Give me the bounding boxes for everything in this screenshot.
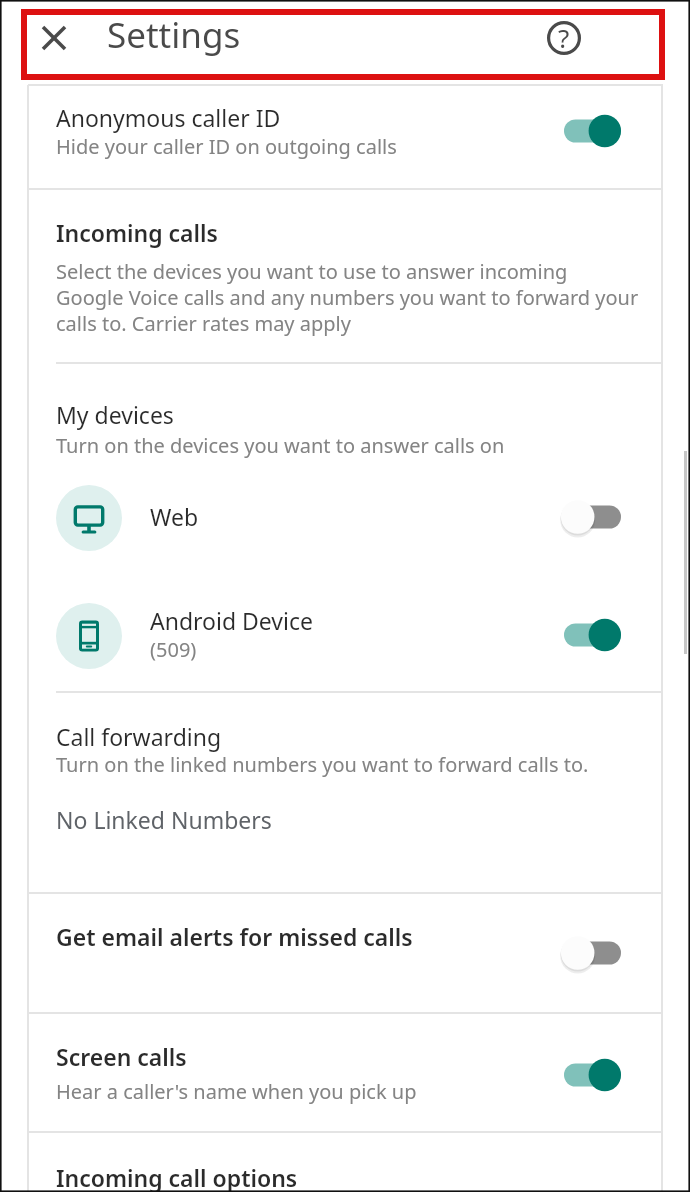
- staticText: ?: [558, 20, 570, 55]
- staticText: Call forwarding: [56, 721, 222, 752]
- button[interactable]: Incoming call options: [0, 1133, 690, 1192]
- button[interactable]: Close: [27, 11, 81, 65]
- staticText: Turn on the linked numbers you want to f…: [56, 751, 589, 778]
- button[interactable]: Get email alerts for missed calls: [0, 894, 690, 1013]
- button[interactable]: Help: [537, 11, 591, 65]
- staticText: Screen calls: [56, 1041, 187, 1072]
- staticText: Hide your caller ID on outgoing calls: [56, 133, 397, 160]
- staticText: Incoming call options: [56, 1162, 298, 1192]
- staticText: No Linked Numbers: [56, 804, 272, 835]
- staticText: Web: [150, 501, 199, 532]
- staticText: Hear a caller's name when you pick up: [56, 1078, 417, 1105]
- staticText: Android Device: [150, 605, 314, 636]
- staticText: My devices: [56, 399, 174, 430]
- button[interactable]: Android Device: [0, 596, 690, 676]
- staticText: Anonymous caller ID: [56, 102, 281, 133]
- staticText: Incoming calls: [56, 217, 218, 248]
- button[interactable]: Anonymous caller ID: [0, 86, 690, 189]
- staticText: Get email alerts for missed calls: [56, 921, 413, 952]
- staticText: Select the devices you want to use to an…: [56, 258, 656, 337]
- button[interactable]: No Linked Numbers: [0, 793, 690, 853]
- staticText: Settings: [107, 11, 241, 59]
- button[interactable]: Screen calls: [0, 1014, 690, 1132]
- button[interactable]: Web: [0, 478, 690, 558]
- staticText: Turn on the devices you want to answer c…: [56, 432, 505, 459]
- staticText: (509): [150, 636, 197, 663]
